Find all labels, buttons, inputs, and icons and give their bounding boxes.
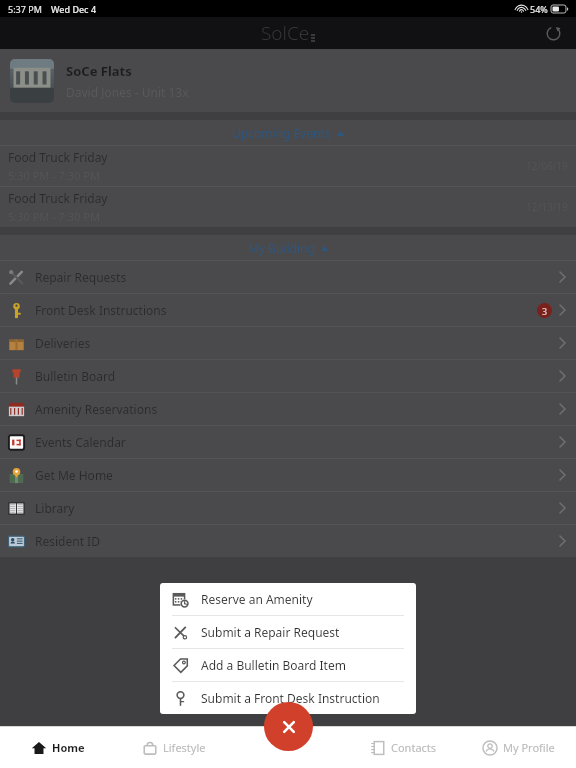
button[interactable]: Food Truck Friday xyxy=(0,145,576,186)
button[interactable]: Events Calendar xyxy=(0,425,576,458)
staticText: Submit a Front Desk Instruction xyxy=(201,690,380,706)
staticText: Bulletin Board xyxy=(35,368,116,384)
staticText: Food Truck Friday xyxy=(8,149,108,165)
button[interactable]: Submit a Front Desk Instruction xyxy=(160,682,416,714)
button[interactable]: Amenity Reservations xyxy=(0,392,576,425)
staticText: Lifestyle xyxy=(163,740,206,755)
staticText: Contacts xyxy=(391,740,437,755)
staticText: Wed Dec 4 xyxy=(51,3,97,15)
button[interactable]: SoCe Flats xyxy=(0,49,576,112)
staticText: Front Desk Instructions xyxy=(35,302,167,318)
staticText: Repair Requests xyxy=(35,269,127,285)
staticText: Events Calendar xyxy=(35,434,126,450)
staticText: 5:30 PM - 7:30 PM xyxy=(8,168,100,183)
staticText: 5:30 PM - 7:30 PM xyxy=(8,209,100,224)
button[interactable]: Front Desk Instructions xyxy=(0,293,576,326)
staticText: David Jones - Unit 13x xyxy=(66,84,189,100)
button[interactable]: Lifestyle xyxy=(116,727,231,768)
staticText: Home xyxy=(52,740,85,755)
button[interactable]: Contacts xyxy=(346,727,461,768)
button[interactable]: Resident ID xyxy=(0,524,576,557)
staticText: Food Truck Friday xyxy=(8,190,108,206)
staticText: Deliveries xyxy=(35,335,91,351)
staticText: Resident ID xyxy=(35,533,100,549)
button[interactable]: Bulletin Board xyxy=(0,359,576,392)
staticText: SolCe xyxy=(261,20,310,46)
button[interactable]: My Building xyxy=(0,235,576,260)
staticText: Get Me Home xyxy=(35,467,113,483)
button[interactable]: Food Truck Friday xyxy=(0,186,576,227)
staticText: 12/06/19 xyxy=(526,159,568,173)
button[interactable]: Submit a Repair Request xyxy=(160,616,416,649)
button[interactable]: Reserve an Amenity xyxy=(160,583,416,616)
button[interactable]: Refresh xyxy=(540,20,566,46)
button[interactable]: My Profile xyxy=(461,727,576,768)
button[interactable]: Add a Bulletin Board Item xyxy=(160,649,416,682)
button[interactable]: Deliveries xyxy=(0,326,576,359)
button[interactable]: Repair Requests xyxy=(0,260,576,293)
staticText: Add a Bulletin Board Item xyxy=(201,657,346,673)
staticText: 5:37 PM xyxy=(8,3,42,15)
staticText: My Profile xyxy=(503,740,555,755)
staticText: Reserve an Amenity xyxy=(201,591,313,607)
staticText: Upcoming Events xyxy=(232,125,331,141)
staticText: My Building xyxy=(248,240,315,256)
button[interactable]: Upcoming Events xyxy=(0,120,576,145)
staticText: Submit a Repair Request xyxy=(201,624,340,640)
button[interactable]: Close menu xyxy=(264,702,313,751)
button[interactable]: Library xyxy=(0,491,576,524)
staticText: 12/13/19 xyxy=(526,200,568,214)
staticText: 54% xyxy=(530,3,548,15)
staticText: SoCe Flats xyxy=(66,62,132,80)
staticText: Amenity Reservations xyxy=(35,401,158,417)
button[interactable]: Home xyxy=(0,727,116,768)
staticText: 3 xyxy=(542,305,548,317)
button[interactable]: Get Me Home xyxy=(0,458,576,491)
staticText: Library xyxy=(35,500,75,516)
